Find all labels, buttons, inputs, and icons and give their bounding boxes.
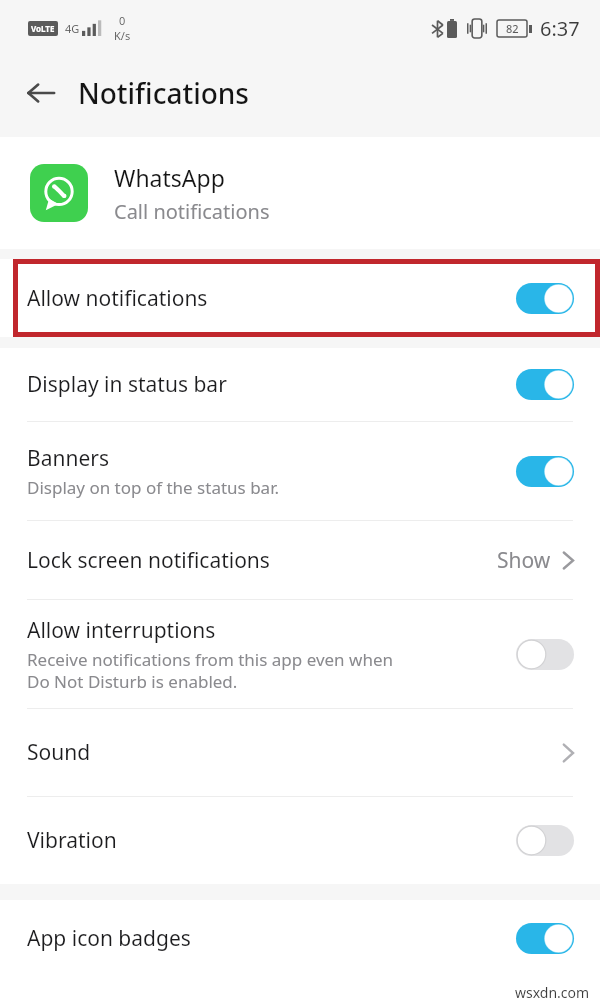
staticText: Allow interruptions xyxy=(27,616,216,645)
staticText: 4G xyxy=(65,21,80,36)
staticText: wsxdn.com xyxy=(515,983,590,1002)
staticText: Lock screen notifications xyxy=(27,546,270,575)
button[interactable]: Banners xyxy=(0,422,600,520)
button[interactable]: Toggle off xyxy=(516,639,574,670)
staticText: Show xyxy=(497,546,551,575)
staticText: Notifications xyxy=(78,74,249,112)
button[interactable]: Toggle on xyxy=(516,456,574,487)
staticText: Call notifications xyxy=(114,198,270,225)
button[interactable]: Vibration xyxy=(0,797,600,884)
staticText: 82 xyxy=(506,21,519,36)
staticText: Receive notifications from this app even… xyxy=(27,648,394,693)
button[interactable]: App icon badges xyxy=(0,900,600,976)
staticText: Vibration xyxy=(27,826,117,855)
button[interactable]: WhatsApp xyxy=(0,137,600,249)
button[interactable]: Toggle on xyxy=(516,369,574,400)
other: Sound settings xyxy=(562,742,574,764)
staticText: Display on top of the status bar. xyxy=(27,476,279,499)
button[interactable]: Toggle on xyxy=(516,283,574,314)
staticText: Banners xyxy=(27,444,109,473)
button[interactable]: Back xyxy=(16,68,66,118)
button[interactable]: Display in status bar xyxy=(0,348,600,421)
staticText: VoLTE xyxy=(31,23,55,34)
staticText: App icon badges xyxy=(27,924,191,953)
staticText: K/s xyxy=(114,28,131,43)
staticText: Sound xyxy=(27,738,91,767)
staticText: 6:37 xyxy=(540,15,580,42)
button[interactable]: Lock screen notifications xyxy=(0,521,600,599)
staticText: Display in status bar xyxy=(27,370,227,399)
staticText: 0 xyxy=(119,13,126,28)
button[interactable]: Allow notifications xyxy=(0,259,600,337)
button[interactable]: Sound xyxy=(0,709,600,796)
staticText: WhatsApp xyxy=(114,162,225,193)
button[interactable]: Toggle on xyxy=(516,923,574,954)
staticText: Allow notifications xyxy=(27,284,516,313)
button[interactable]: Allow interruptions xyxy=(0,600,600,708)
button[interactable]: Toggle off xyxy=(516,825,574,856)
